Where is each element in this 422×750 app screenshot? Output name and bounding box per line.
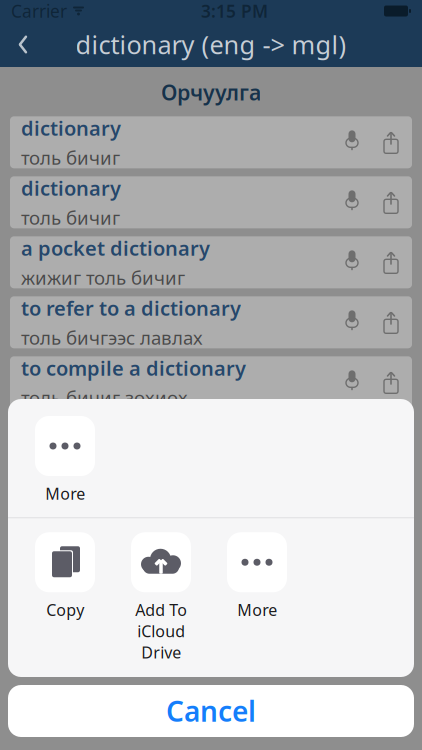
button[interactable]: dictionary <box>10 536 412 588</box>
staticText: толь бичиг <box>21 445 120 470</box>
button[interactable]: dictionary <box>10 116 412 168</box>
staticText: толь бичиг <box>21 205 120 230</box>
staticText: 3:15 PM <box>201 0 268 22</box>
staticText: толь бичиг <box>21 565 120 590</box>
staticText: Copy <box>46 599 84 620</box>
staticText: dictionary (eng -> mgl) <box>75 28 346 61</box>
button[interactable]: to refer to a dictionary <box>10 296 412 348</box>
staticText: dictionary <box>21 115 121 141</box>
staticText: dictionary <box>21 175 121 201</box>
staticText: Орчуулга <box>161 78 261 106</box>
staticText: dictionary <box>21 415 121 441</box>
button[interactable]: dictionary <box>10 176 412 228</box>
staticText: dictionary attack <box>21 475 188 501</box>
button[interactable]: Cancel <box>8 685 414 737</box>
staticText: толь бичгийн довтолгоо <box>21 505 240 530</box>
staticText: Add To iCloud Drive <box>135 599 187 663</box>
button[interactable]: dictionary <box>10 416 412 468</box>
staticText: More <box>237 599 277 620</box>
staticText: Carrier <box>11 0 67 22</box>
staticText: a pocket dictionary <box>21 235 210 261</box>
button[interactable]: dictionary attack <box>10 476 412 528</box>
button[interactable]: More <box>24 416 106 504</box>
button[interactable]: Back <box>0 22 46 66</box>
staticText: толь бичиг зохиох <box>21 385 188 410</box>
staticText: толь бичиг <box>21 145 120 170</box>
staticText: толь бичгээс лавлах <box>21 325 203 350</box>
button[interactable]: Add To iCloud Drive <box>120 532 202 663</box>
staticText: dictionary <box>21 535 121 561</box>
button[interactable]: a pocket dictionary <box>10 236 412 288</box>
button[interactable]: More <box>216 532 298 620</box>
staticText: Cancel <box>166 692 256 730</box>
staticText: More <box>45 483 85 504</box>
staticText: to refer to a dictionary <box>21 295 241 321</box>
button[interactable]: to compile a dictionary <box>10 356 412 408</box>
staticText: жижиг толь бичиг <box>21 265 185 290</box>
button[interactable]: Copy <box>24 532 106 620</box>
staticText: to compile a dictionary <box>21 355 246 381</box>
